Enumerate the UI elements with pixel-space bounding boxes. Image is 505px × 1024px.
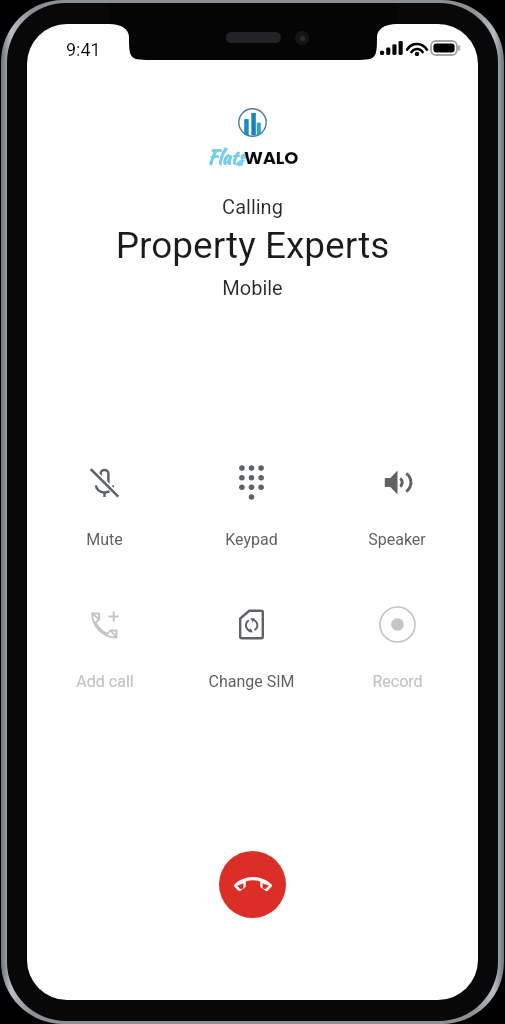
staticText: Flats	[207, 143, 244, 171]
staticText: Keypad	[225, 530, 278, 549]
button[interactable]: Speaker	[324, 467, 470, 549]
staticText: Calling	[27, 195, 478, 218]
staticText: Mute	[86, 530, 123, 549]
button[interactable]: Mute	[31, 467, 178, 549]
button[interactable]: End call	[219, 851, 286, 918]
staticText: WALO	[244, 145, 299, 170]
button[interactable]: Change SIM	[178, 609, 324, 691]
staticText: Property Experts	[27, 224, 478, 267]
staticText: Mobile	[27, 276, 478, 299]
button[interactable]: Keypad	[178, 467, 324, 549]
staticText: Record	[372, 672, 423, 691]
staticText: Change SIM	[208, 672, 295, 691]
staticText: 9:41	[66, 39, 101, 60]
button[interactable]: Record	[324, 609, 470, 691]
button[interactable]: Add call	[31, 609, 178, 691]
staticText: Speaker	[368, 530, 426, 549]
staticText: Add call	[76, 672, 134, 691]
